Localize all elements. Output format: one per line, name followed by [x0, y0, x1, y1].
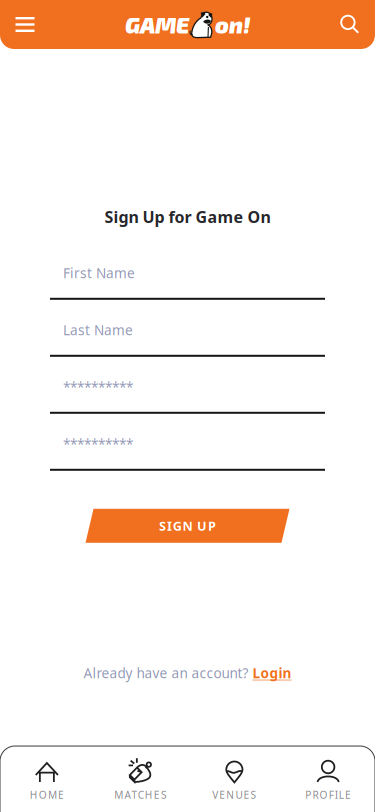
button[interactable]: Login: [252, 664, 291, 682]
staticText: GAME: [125, 11, 189, 38]
staticText: on!: [215, 11, 250, 38]
staticText: **********: [63, 378, 133, 396]
button[interactable]: Menu: [4, 3, 46, 45]
button[interactable]: PROFILE: [281, 746, 375, 812]
button[interactable]: Search: [329, 3, 371, 45]
staticText: **********: [63, 435, 133, 453]
staticText: Login: [252, 664, 291, 682]
staticText: First Name: [63, 264, 135, 282]
staticText: Last Name: [63, 321, 133, 339]
staticText: PROFILE: [305, 788, 351, 802]
button[interactable]: HOME: [0, 746, 94, 812]
staticText: SIGN UP: [159, 517, 216, 534]
staticText: Sign Up for Game On: [104, 206, 270, 228]
staticText: MATCHES: [114, 788, 167, 802]
button[interactable]: SIGN UP: [85, 509, 289, 543]
button[interactable]: MATCHES: [94, 746, 188, 812]
staticText: VENUES: [212, 788, 257, 802]
staticText: HOME: [30, 788, 64, 802]
button[interactable]: VENUES: [187, 746, 281, 812]
staticText: Already have an account?: [83, 664, 248, 682]
